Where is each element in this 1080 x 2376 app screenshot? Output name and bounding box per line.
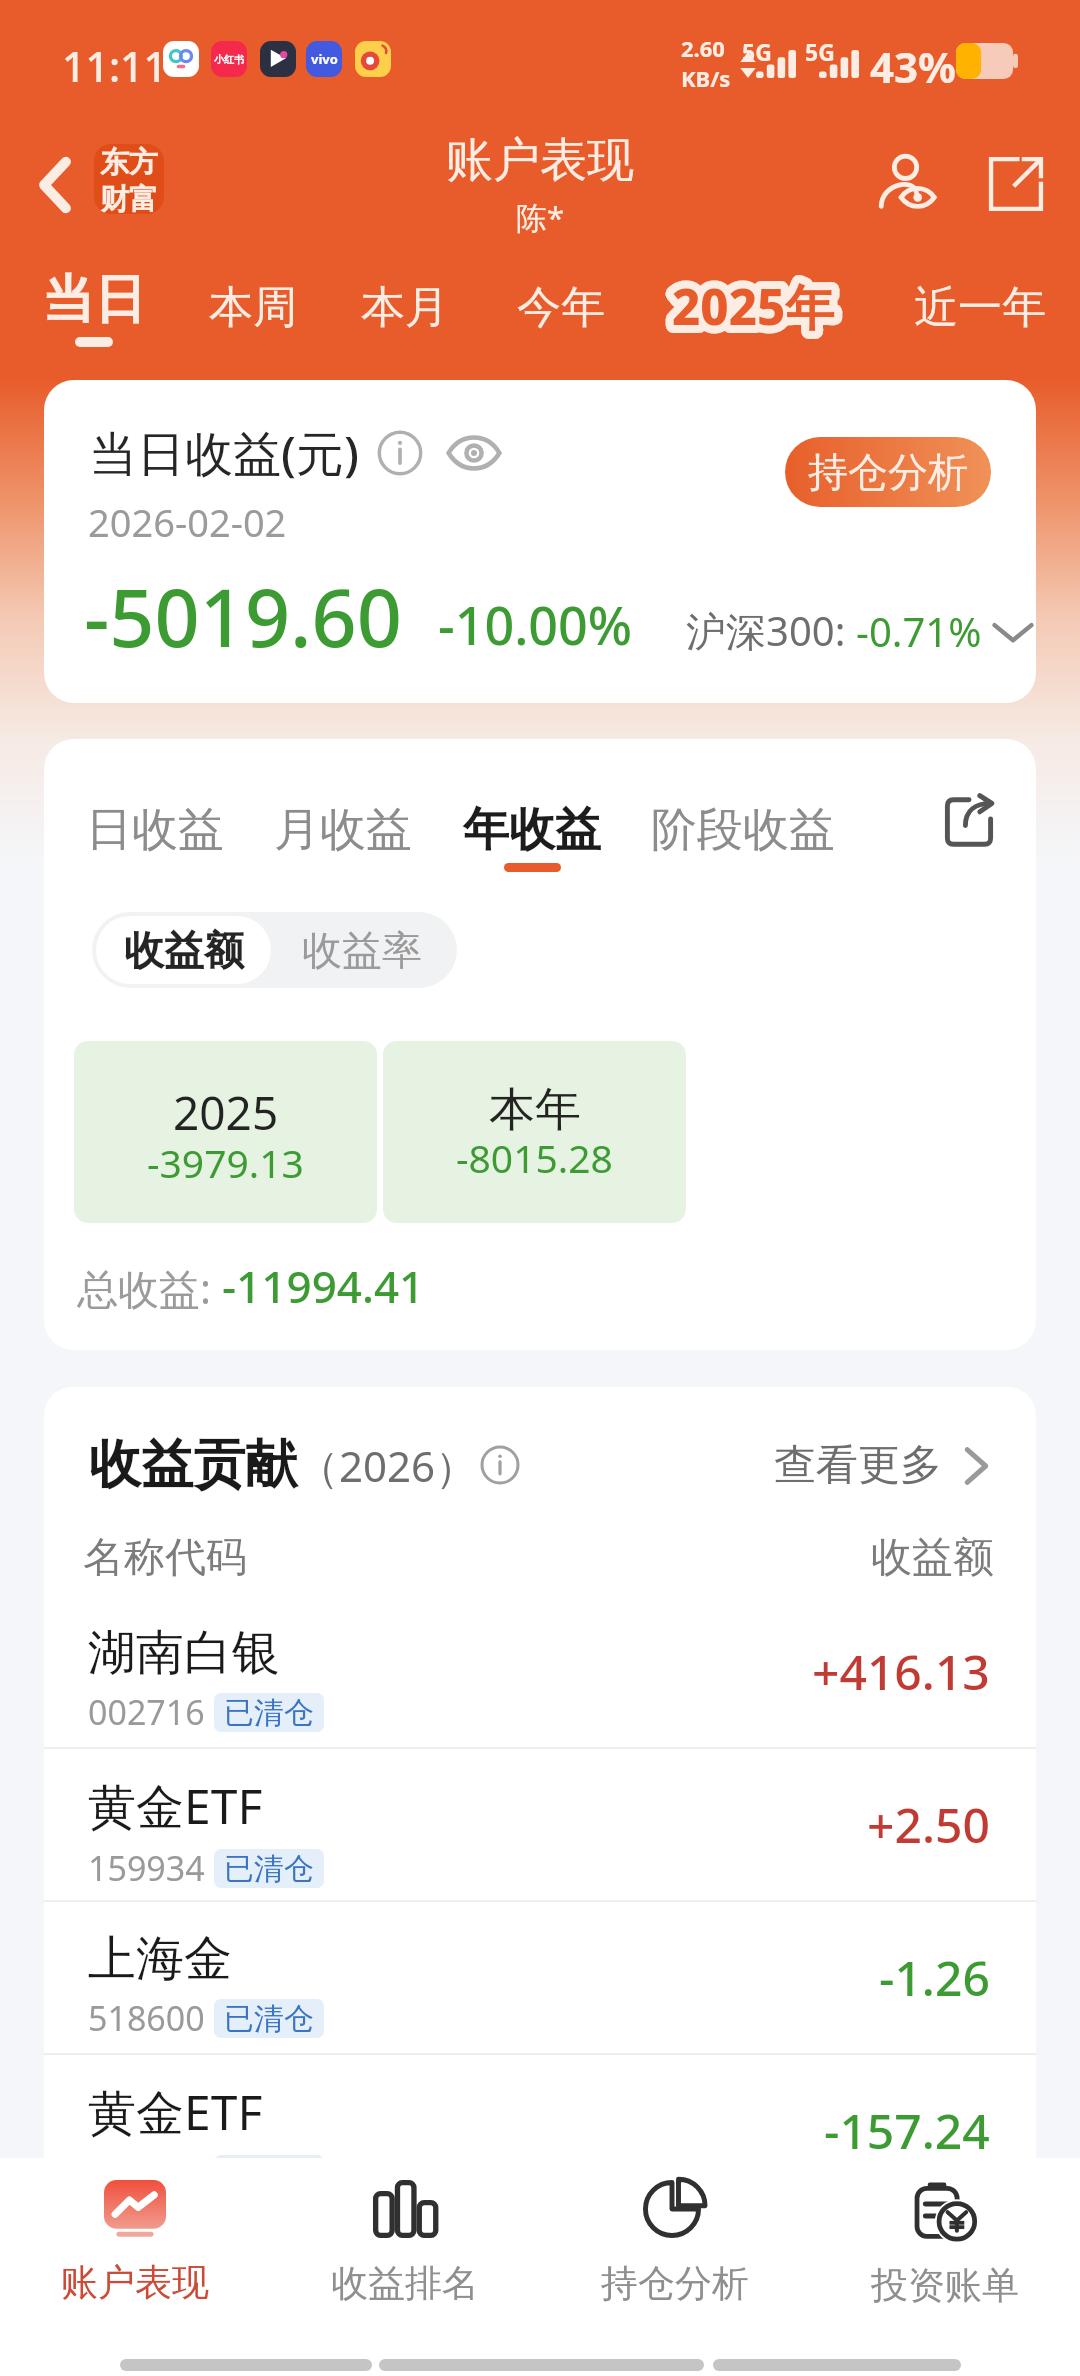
staticText: 上海金 (88, 1929, 232, 1989)
staticText: 近一年 (914, 280, 1046, 335)
staticText: 月收益 (274, 801, 412, 859)
button[interactable]: 收益率 (271, 916, 453, 984)
button[interactable]: 2025 (74, 1041, 377, 1223)
staticText: 投资账单 (871, 2262, 1019, 2309)
button[interactable]: 本月 (351, 270, 459, 345)
button[interactable]: 黄金ETF (44, 1749, 1036, 1900)
staticText: 已清仓 (224, 1694, 314, 1732)
button[interactable]: 本年 (383, 1041, 686, 1223)
staticText: 财富 (100, 181, 158, 214)
staticText: 518600 (88, 1995, 205, 2041)
staticText: -1.26 (879, 1945, 990, 2010)
staticText: 黄金ETF (88, 2079, 263, 2145)
button[interactable]: 黄金ETF (44, 2055, 1036, 2206)
staticText: 43% (870, 38, 956, 95)
staticText: -157.24 (824, 2098, 990, 2163)
staticText: +416.13 (812, 1639, 990, 1704)
staticText: -10.00% (438, 589, 633, 660)
staticText: 已清仓 (224, 2000, 314, 2038)
staticText: 湖南白银 (88, 1623, 280, 1683)
button[interactable]: Share (934, 787, 1004, 857)
staticText: 已清仓 (224, 1850, 314, 1888)
staticText: 2025 (173, 1081, 279, 1144)
staticText: 002716 (88, 1689, 205, 1735)
button[interactable]: Back (20, 150, 90, 220)
staticText: 东方 (100, 144, 158, 181)
staticText: 2025年 (672, 273, 835, 340)
button[interactable]: 本周 (199, 270, 307, 345)
staticText: 阶段收益 (651, 801, 835, 859)
button[interactable]: 2025年 (662, 263, 845, 350)
staticText: 账户表现 (446, 131, 634, 190)
button[interactable]: 当日 (32, 267, 156, 347)
button[interactable]: 收益额 (96, 916, 271, 984)
staticText: 持仓分析 (601, 2260, 749, 2307)
staticText: 陈* (516, 196, 565, 238)
staticText: 沪深300: (686, 603, 856, 658)
button[interactable]: 月收益 (264, 793, 422, 880)
staticText: 名称代码 (83, 1532, 247, 1584)
button[interactable]: 收益排名 (270, 2158, 540, 2313)
staticText: -0.71% (856, 604, 982, 658)
button[interactable]: 查看更多 (774, 1439, 998, 1492)
staticText: vivo (311, 50, 338, 68)
button[interactable]: 年收益 (453, 793, 611, 880)
button[interactable]: 持仓分析 (540, 2158, 810, 2313)
staticText: 年收益 (463, 801, 601, 859)
staticText: 收益额 (871, 1532, 994, 1584)
staticText: 5G (742, 36, 772, 67)
staticText: 收益排名 (331, 2260, 479, 2307)
staticText: 本年 (489, 1081, 581, 1139)
button[interactable]: 湖南白银 (44, 1596, 1036, 1747)
staticText: -5019.60 (84, 563, 402, 671)
staticText: 收益贡献 (89, 1432, 297, 1498)
staticText: 本月 (361, 280, 449, 335)
staticText: 2.60 (681, 33, 725, 63)
staticText: -3979.13 (147, 1136, 304, 1189)
staticText: 今年 (517, 280, 605, 335)
staticText: 2026-02-02 (88, 496, 287, 548)
staticText: 小红书 (214, 53, 244, 66)
staticText: 黄金ETF (88, 1773, 263, 1839)
staticText: -11994.41 (222, 1256, 425, 1316)
staticText: 本周 (209, 280, 297, 335)
staticText: 当日收益(元) (89, 420, 359, 486)
button[interactable]: 持仓分析 (785, 437, 991, 507)
staticText: -8015.28 (456, 1131, 613, 1184)
button[interactable]: 东方 (94, 144, 164, 214)
staticText: KB/s (681, 63, 731, 93)
staticText: 159934 (88, 1845, 205, 1891)
button[interactable]: 阶段收益 (641, 793, 845, 880)
staticText: +2.50 (867, 1792, 990, 1857)
staticText: 收益额 (124, 925, 244, 975)
button[interactable]: Share (974, 142, 1058, 226)
staticText: 持仓分析 (808, 447, 968, 497)
button[interactable]: 投资账单 (810, 2158, 1080, 2313)
staticText: 总收益: (77, 1260, 222, 1316)
button[interactable]: Profile (868, 140, 952, 224)
button[interactable]: 上海金 (44, 1902, 1036, 2053)
staticText: 11:11 (62, 38, 167, 94)
button[interactable]: 近一年 (904, 270, 1056, 345)
staticText: 账户表现 (61, 2259, 209, 2306)
staticText: 查看更多 (774, 1439, 942, 1492)
staticText: 收益率 (302, 925, 422, 975)
staticText: 日收益 (86, 801, 224, 859)
button[interactable]: 日收益 (76, 793, 234, 880)
button[interactable]: 账户表现 (0, 2158, 270, 2313)
staticText: 5G (805, 36, 835, 67)
staticText: 518800 (88, 2151, 205, 2197)
button[interactable]: 今年 (507, 270, 615, 345)
staticText: 已清仓 (224, 2156, 314, 2194)
staticText: 当日 (42, 267, 146, 333)
staticText: 2025年 (672, 273, 835, 340)
staticText: （2026） (297, 1437, 478, 1494)
